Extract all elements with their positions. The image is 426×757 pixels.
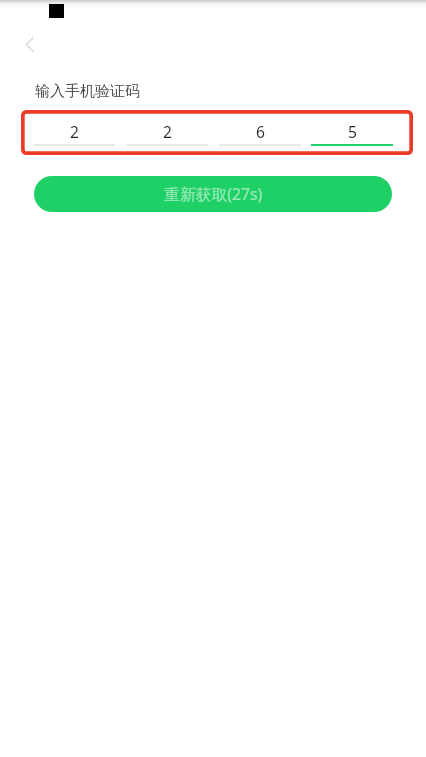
staticText: 2 (163, 121, 172, 142)
button[interactable]: 重新获取(27s) (34, 176, 392, 212)
button[interactable]: 2 (126, 114, 208, 148)
button[interactable]: Back (14, 31, 41, 58)
staticText: 重新获取(27s) (164, 183, 263, 205)
staticText: 2 (70, 121, 79, 142)
button[interactable]: 5 (311, 114, 393, 148)
staticText: 输入手机验证码 (35, 82, 140, 101)
button[interactable]: 6 (219, 114, 301, 148)
staticText: 5 (348, 121, 357, 142)
staticText: 6 (256, 121, 265, 142)
button[interactable]: 2 (33, 114, 115, 148)
